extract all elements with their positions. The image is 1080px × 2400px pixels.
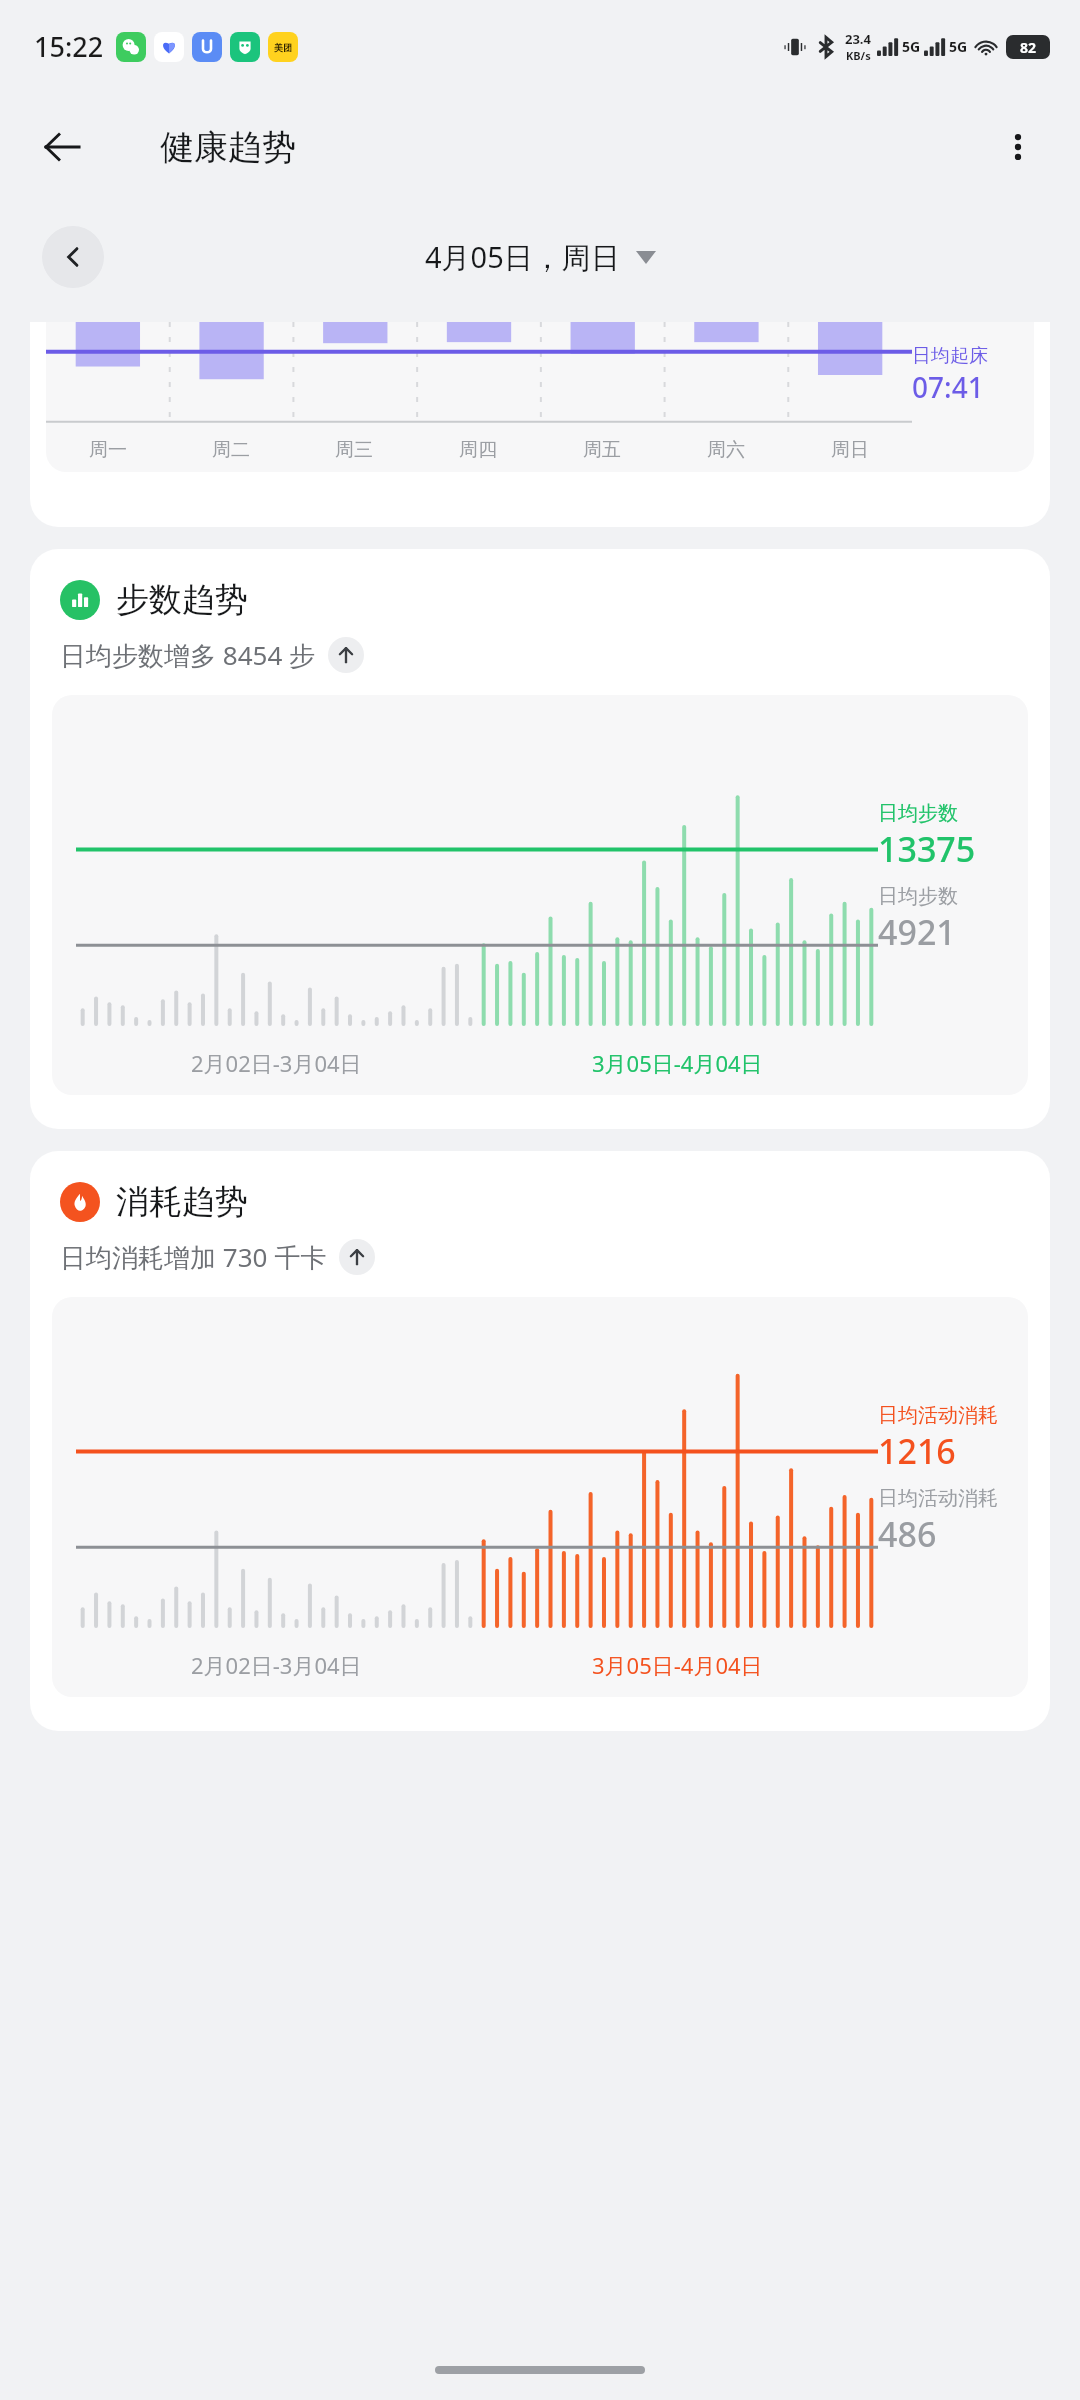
staticText: 日均起床 [912, 344, 988, 368]
staticText: KB/s [846, 48, 871, 63]
button[interactable]: 消耗趋势 [30, 1151, 1050, 1731]
staticText: 日均步数增多 8454 步 [60, 637, 316, 673]
staticText: 消耗趋势 [116, 1181, 248, 1223]
staticText: 486 [878, 1511, 937, 1557]
button[interactable]: More options [986, 115, 1050, 179]
staticText: 15:22 [34, 28, 104, 65]
staticText: 日均步数 [878, 884, 958, 909]
staticText: 日均活动消耗 [878, 1486, 998, 1511]
staticText: 周四 [459, 438, 497, 462]
staticText: 健康趋势 [160, 126, 296, 169]
staticText: 5G [902, 37, 921, 56]
staticText: 13375 [878, 826, 976, 872]
staticText: 周六 [707, 438, 745, 462]
button[interactable]: Back [30, 115, 94, 179]
staticText: 3月05日-4月04日 [592, 1048, 763, 1078]
staticText: 3月05日-4月04日 [592, 1650, 763, 1680]
staticText: 82 [1020, 38, 1037, 57]
staticText: 07:41 [912, 368, 984, 406]
staticText: 5G [949, 37, 968, 56]
staticText: 美团 [274, 42, 292, 53]
staticText: 周二 [212, 438, 250, 462]
staticText: 2月02日-3月04日 [191, 1048, 362, 1078]
staticText: 步数趋势 [116, 579, 248, 621]
staticText: 4月05日，周日 [425, 237, 620, 277]
staticText: 周一 [89, 438, 127, 462]
staticText: 周三 [335, 438, 373, 462]
button[interactable]: 步数趋势 [30, 549, 1050, 1129]
staticText: 4921 [878, 909, 956, 955]
staticText: 日均步数 [878, 801, 958, 826]
staticText: 2月02日-3月04日 [191, 1650, 362, 1680]
staticText: 23.4 [845, 30, 871, 48]
staticText: 日均活动消耗 [878, 1403, 998, 1428]
button[interactable]: Previous day [42, 226, 104, 288]
staticText: 周五 [583, 438, 621, 462]
staticText: 日均消耗增加 730 千卡 [60, 1239, 327, 1275]
button[interactable]: 周一 [30, 322, 1050, 527]
staticText: 周日 [831, 438, 869, 462]
staticText: 1216 [878, 1428, 956, 1474]
